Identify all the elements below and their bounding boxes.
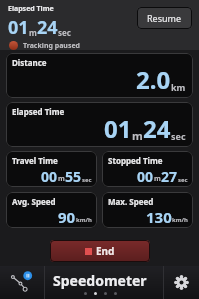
- staticText: 55: [65, 167, 82, 186]
- staticText: 27: [161, 167, 178, 186]
- staticText: 01: [104, 112, 132, 145]
- button[interactable]: Avg. Speed: [6, 192, 97, 228]
- button[interactable]: Travel Time: [6, 151, 97, 187]
- staticText: Distance: [12, 57, 47, 68]
- button[interactable]: End: [50, 240, 150, 262]
- button[interactable]: Distance: [6, 53, 193, 98]
- staticText: m: [132, 128, 143, 143]
- staticText: Stopped Time: [108, 155, 163, 166]
- button[interactable]: Settings: [164, 266, 199, 299]
- staticText: km/h: [172, 216, 188, 224]
- staticText: m: [58, 174, 65, 184]
- button[interactable]: Resume: [137, 7, 192, 29]
- staticText: Max. Speed: [108, 196, 154, 207]
- staticText: Elapsed Time: [8, 4, 54, 14]
- staticText: 01: [8, 15, 29, 40]
- button[interactable]: Max. Speed: [102, 192, 193, 228]
- staticText: 00: [41, 167, 58, 186]
- staticText: 24: [143, 112, 171, 145]
- button[interactable]: Route: [0, 266, 44, 299]
- staticText: 24: [37, 15, 58, 40]
- staticText: m: [154, 174, 161, 184]
- staticText: Resume: [147, 12, 182, 24]
- staticText: End: [96, 244, 115, 258]
- staticText: m: [29, 27, 37, 38]
- staticText: km/h: [76, 216, 92, 224]
- button[interactable]: Stopped Time: [102, 151, 193, 187]
- staticText: sec: [171, 130, 186, 142]
- staticText: km: [171, 81, 186, 93]
- staticText: 130: [146, 207, 172, 227]
- button[interactable]: Elapsed Time: [6, 102, 193, 147]
- staticText: sec: [82, 176, 92, 184]
- button[interactable]: Speedometer: [53, 271, 147, 295]
- staticText: Avg. Speed: [12, 196, 56, 207]
- staticText: sec: [58, 27, 71, 38]
- staticText: Travel Time: [12, 155, 58, 166]
- staticText: Speedometer: [53, 271, 147, 290]
- staticText: sec: [178, 176, 188, 184]
- staticText: 2.0: [136, 63, 171, 96]
- staticText: 00: [137, 167, 154, 186]
- staticText: Tracking paused: [23, 41, 80, 50]
- staticText: Elapsed Time: [12, 106, 65, 117]
- staticText: 90: [58, 207, 76, 227]
